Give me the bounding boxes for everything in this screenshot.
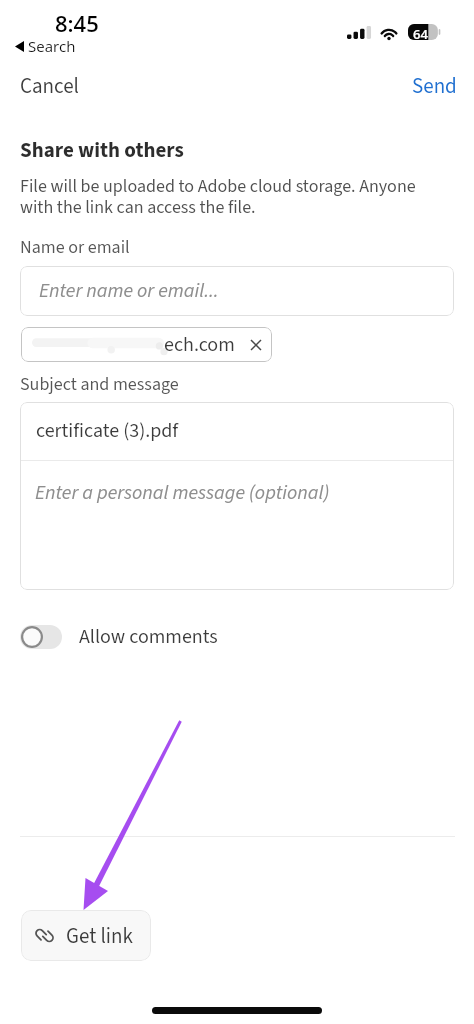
staticText: Name or email xyxy=(20,235,130,261)
button[interactable]: Enter a personal message (optional) xyxy=(20,461,454,590)
button[interactable]: Send xyxy=(392,62,474,104)
staticText: File will be uploaded to Adobe cloud sto… xyxy=(20,174,430,221)
button[interactable]: Cancel xyxy=(0,62,99,104)
staticText: Subject and message xyxy=(20,372,179,398)
staticText: 64 xyxy=(413,25,428,41)
staticText: Enter name or email... xyxy=(39,277,219,305)
button[interactable]: certificate (3).pdf xyxy=(20,402,454,460)
staticText: Search xyxy=(28,36,76,56)
staticText: Share with others xyxy=(20,135,184,165)
button[interactable]: Allow comments toggle xyxy=(20,623,218,651)
button[interactable]: Get link xyxy=(21,910,151,961)
staticText: Cancel xyxy=(20,71,79,95)
staticText: Allow comments xyxy=(79,623,218,651)
button[interactable]: Enter name or email... xyxy=(20,266,454,316)
staticText: 8:45 xyxy=(55,8,99,38)
other: Remove recipient xyxy=(248,337,264,353)
other: Allow comments toggle xyxy=(20,625,62,649)
button[interactable]: ech.com xyxy=(21,327,272,362)
staticText: Get link xyxy=(66,921,133,951)
staticText: Enter a personal message (optional) xyxy=(35,479,330,507)
staticText: certificate (3).pdf xyxy=(36,417,179,445)
staticText: ech.com xyxy=(164,331,235,359)
staticText: Send xyxy=(412,71,457,95)
